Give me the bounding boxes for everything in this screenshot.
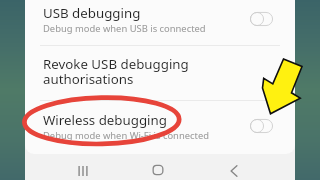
staticText: USB debugging: [43, 4, 141, 22]
button[interactable]: Home: [145, 159, 171, 180]
button[interactable]: Toggle off: [250, 12, 273, 26]
button[interactable]: Back: [221, 160, 247, 180]
staticText: Debug mode when Wi-Fi is connected: [43, 129, 209, 142]
button[interactable]: Toggle off: [250, 119, 273, 133]
staticText: Revoke USB debugging authorisations: [43, 55, 189, 88]
button[interactable]: Wireless debugging: [25, 100, 295, 152]
staticText: Debug mode when USB is connected: [43, 22, 206, 35]
button[interactable]: Recents: [70, 160, 96, 180]
staticText: Wireless debugging: [43, 111, 167, 129]
button[interactable]: USB debugging: [25, 0, 295, 45]
button[interactable]: Revoke USB debugging authorisations: [25, 45, 295, 100]
